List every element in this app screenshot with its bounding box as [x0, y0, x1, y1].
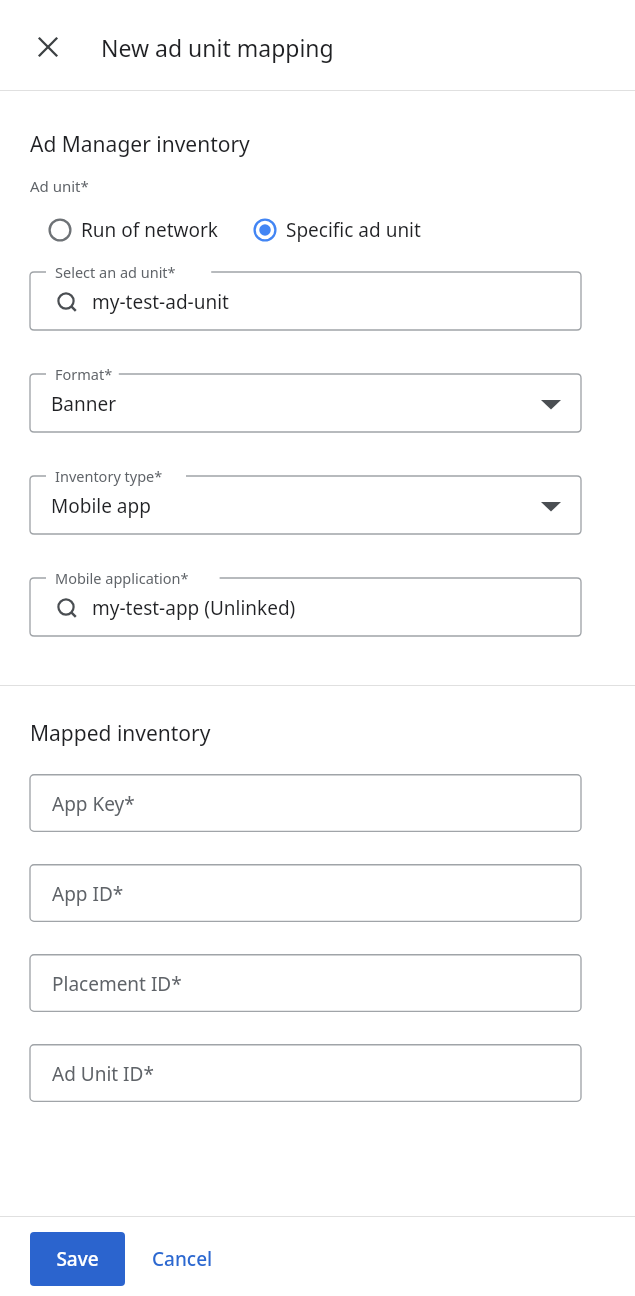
- button[interactable]: Specific ad unit: [249, 213, 425, 247]
- staticText: Cancel: [152, 1246, 213, 1272]
- staticText: Specific ad unit: [286, 217, 421, 243]
- staticText: App ID*: [52, 881, 124, 907]
- staticText: Ad unit*: [30, 176, 89, 196]
- staticText: Format*: [55, 364, 113, 384]
- staticText: Banner: [51, 391, 117, 417]
- staticText: App Key*: [52, 791, 135, 817]
- button[interactable]: Inventory type*: [0, 464, 635, 534]
- button[interactable]: App Key*: [0, 774, 635, 832]
- button[interactable]: Run of network: [44, 213, 222, 247]
- button[interactable]: Placement ID*: [0, 954, 635, 1012]
- staticText: Ad Manager inventory: [30, 130, 250, 159]
- staticText: Inventory type*: [55, 466, 163, 486]
- button[interactable]: Cancel: [140, 1232, 225, 1286]
- staticText: Mapped inventory: [30, 719, 211, 748]
- button[interactable]: App ID*: [0, 864, 635, 922]
- staticText: my-test-ad-unit: [92, 289, 229, 315]
- button[interactable]: Select an ad unit*: [0, 260, 635, 330]
- button[interactable]: Save: [30, 1232, 125, 1286]
- staticText: New ad unit mapping: [101, 32, 334, 63]
- staticText: my-test-app (Unlinked): [92, 595, 296, 621]
- button[interactable]: Close: [30, 29, 66, 65]
- staticText: Select an ad unit*: [55, 262, 176, 282]
- button[interactable]: Format*: [0, 362, 635, 432]
- staticText: Ad Unit ID*: [52, 1061, 154, 1087]
- button[interactable]: Mobile application*: [0, 566, 635, 636]
- button[interactable]: Ad Unit ID*: [0, 1044, 635, 1102]
- staticText: Mobile application*: [55, 568, 189, 588]
- staticText: Save: [56, 1246, 99, 1272]
- staticText: Placement ID*: [52, 971, 182, 997]
- staticText: Mobile app: [51, 493, 151, 519]
- staticText: Run of network: [81, 217, 218, 243]
